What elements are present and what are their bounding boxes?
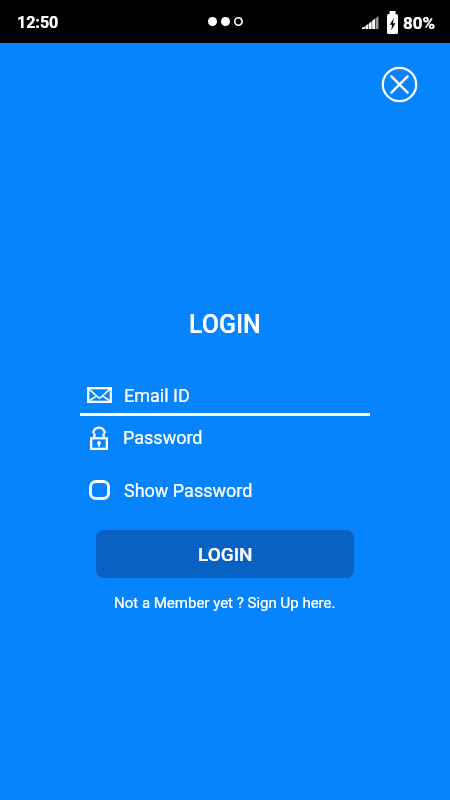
button[interactable]: Email ID <box>80 378 370 412</box>
staticText: LOGIN <box>198 543 253 565</box>
button[interactable]: Not a Member yet ? Sign Up here. <box>114 594 336 612</box>
staticText: Not a Member yet ? Sign Up here. <box>114 594 336 612</box>
button[interactable]: Show Password <box>80 473 370 507</box>
button[interactable]: LOGIN <box>96 530 354 578</box>
staticText: Password <box>123 427 203 448</box>
staticText: 12:50 <box>17 13 59 32</box>
button[interactable]: Password <box>80 420 370 454</box>
staticText: Show Password <box>124 480 253 501</box>
staticText: LOGIN <box>189 310 261 339</box>
staticText: Email ID <box>124 385 190 406</box>
staticText: 80% <box>403 13 436 33</box>
button[interactable]: Close <box>381 66 418 103</box>
